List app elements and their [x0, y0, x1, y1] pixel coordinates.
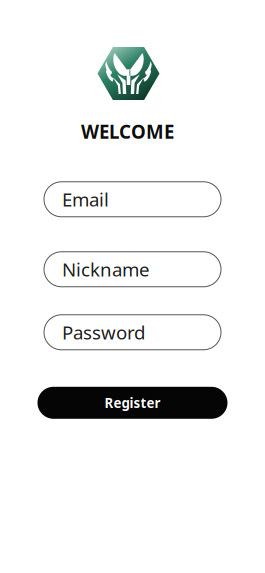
staticText: Email	[62, 187, 109, 212]
staticText: Register	[104, 394, 160, 412]
button[interactable]: Register	[37, 387, 227, 419]
staticText: Password	[62, 320, 145, 345]
button[interactable]: Email	[44, 182, 221, 217]
staticText: WELCOME	[81, 119, 174, 144]
button[interactable]: Nickname	[44, 252, 221, 287]
button[interactable]: Password	[44, 315, 221, 350]
staticText: Nickname	[62, 257, 150, 282]
